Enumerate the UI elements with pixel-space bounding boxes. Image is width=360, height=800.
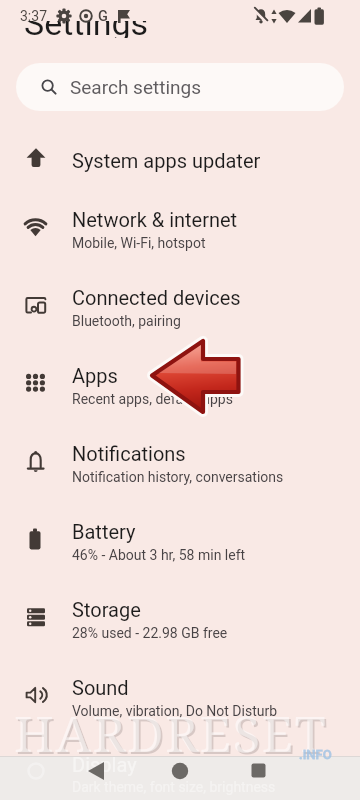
button[interactable]: Search settings [16,63,344,111]
staticText: Mobile, Wi-Fi, hotspot [72,235,206,251]
staticText: 46% - About 3 hr, 58 min left [72,547,246,563]
staticText: Network & internet [72,208,238,231]
button[interactable]: Battery [0,504,360,582]
staticText: Notifications [72,442,186,465]
button[interactable] [245,758,273,786]
staticText: Recent apps, default apps [72,391,233,407]
staticText: Search settings [70,76,201,98]
button[interactable]: Apps [0,348,360,426]
button[interactable]: Notifications [0,426,360,504]
staticText: HARDRESET [16,701,330,761]
staticText: G [98,8,108,25]
staticText: Display [72,753,137,776]
staticText: Volume, vibration, Do Not Disturb [72,703,278,719]
staticText: Apps [72,364,118,387]
staticText: Bluetooth, pairing [72,313,181,329]
button[interactable]: Network & internet [0,192,360,270]
button[interactable]: Sound [0,660,360,738]
button[interactable]: Storage [0,582,360,660]
button[interactable]: Connected devices [0,270,360,348]
staticText: Connected devices [72,286,241,309]
button[interactable]: System apps updater [0,132,360,188]
button[interactable] [80,758,112,786]
staticText: Sound [72,676,129,699]
staticText: Battery [72,520,136,543]
staticText: Notification history, conversations [72,469,284,485]
staticText: HARDRESET [14,699,328,759]
staticText: Settings [24,21,149,38]
staticText: 28% used - 22.98 GB free [72,625,228,641]
staticText: .INFO [299,747,332,762]
staticText: Dark theme, font size, brightness [72,779,276,795]
staticText: Storage [72,598,141,621]
button[interactable] [166,758,194,786]
staticText: 3:37 [20,8,47,24]
staticText: System apps updater [72,149,261,172]
